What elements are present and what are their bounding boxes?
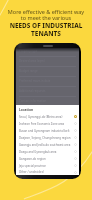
button[interactable]: Daejeon, Sejong, Chungcheong region <box>19 134 77 141</box>
button[interactable]: Seoul, Gyeonggi-do (Metro area) <box>19 113 77 120</box>
staticText: Daegu and Gyeongbuk area <box>19 150 73 154</box>
staticText: NEEDS OF INDUSTRIAL TENANTS <box>6 20 86 38</box>
staticText: Daejeon, Sejong, Chungcheong region <box>19 136 73 140</box>
button[interactable]: Daegu and Gyeongbuk area <box>19 148 77 155</box>
staticText: Busan and Gyeongnam industrial belt <box>19 129 73 133</box>
button[interactable]: Other / undecided <box>19 169 77 175</box>
button[interactable]: Jeju special province <box>19 162 77 169</box>
staticText: Seoul, Gyeonggi-do (Metro area) <box>19 115 73 119</box>
staticText: Incheon Free Economic Zone area <box>19 122 73 126</box>
staticText: Gwangju and Jeolla-do southwest area <box>19 143 73 147</box>
button[interactable]: Busan and Gyeongnam industrial belt <box>19 127 77 134</box>
staticText: Gangwon-do region <box>19 157 73 161</box>
staticText: More effective & efficient way to meet t… <box>0 8 92 22</box>
button[interactable]: Incheon Free Economic Zone area <box>19 120 77 127</box>
staticText: Jeju special province <box>19 164 73 168</box>
staticText: Other / undecided <box>19 170 73 174</box>
staticText: Location <box>19 107 34 111</box>
staticText: Property type <box>19 49 38 53</box>
button[interactable]: Gwangju and Jeolla-do southwest area <box>19 141 77 148</box>
button[interactable]: Gangwon-do region <box>19 155 77 162</box>
